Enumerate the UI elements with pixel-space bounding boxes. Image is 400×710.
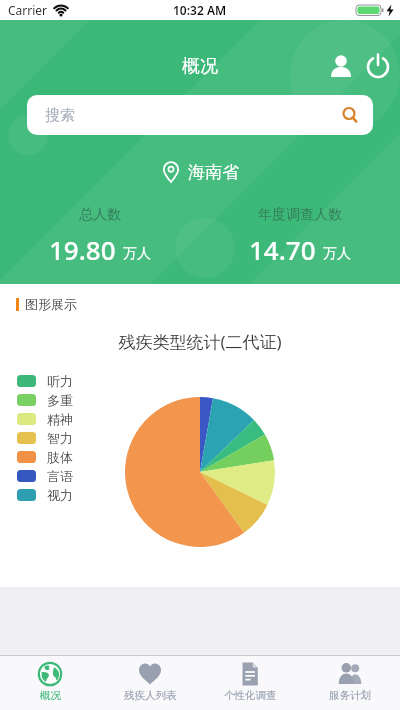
staticText: 个性化调查	[224, 689, 277, 702]
staticText: 搜索	[45, 106, 75, 125]
button[interactable]: 海南省	[0, 159, 400, 185]
button[interactable]: 概况	[0, 656, 100, 710]
staticText: 总人数	[79, 206, 121, 224]
staticText: 海南省	[188, 162, 239, 183]
staticText: 服务计划	[329, 689, 371, 702]
staticText: 多重	[47, 392, 73, 408]
button[interactable]: 精神	[17, 409, 73, 428]
staticText: 肢体	[47, 449, 73, 465]
staticText: 图形展示	[25, 296, 77, 312]
button[interactable]: 听力	[17, 371, 73, 390]
button[interactable]: 个性化调查	[200, 656, 300, 710]
staticText: 19.80	[49, 232, 116, 267]
staticText: 视力	[47, 487, 73, 503]
button[interactable]	[330, 54, 354, 78]
staticText: 概况	[40, 689, 61, 702]
button[interactable]: 服务计划	[300, 656, 400, 710]
button[interactable]: 多重	[17, 390, 73, 409]
button[interactable]	[366, 54, 390, 78]
staticText: 残疾人列表	[124, 689, 177, 702]
staticText: 听力	[47, 373, 73, 389]
button[interactable]: 残疾人列表	[100, 656, 200, 710]
staticText: 残疾类型统计(二代证)	[0, 330, 400, 353]
staticText: 14.70	[249, 232, 316, 267]
staticText: 10:32 AM	[173, 2, 227, 18]
button[interactable]: 言语	[17, 466, 73, 485]
staticText: 万人	[123, 245, 151, 263]
button[interactable]: 视力	[17, 485, 73, 504]
staticText: 年度调查人数	[258, 206, 342, 224]
button[interactable]: 肢体	[17, 447, 73, 466]
staticText: 万人	[323, 245, 351, 263]
button[interactable]: 智力	[17, 428, 73, 447]
staticText: Carrier	[8, 2, 48, 18]
staticText: 言语	[47, 468, 73, 484]
staticText: 精神	[47, 411, 73, 427]
button[interactable]: 搜索	[27, 95, 373, 135]
staticText: 智力	[47, 430, 73, 446]
staticText: 概况	[182, 55, 218, 78]
